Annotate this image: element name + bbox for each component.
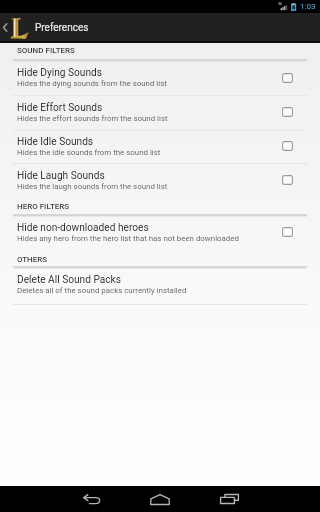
staticText: Hide Dying Sounds — [17, 67, 102, 79]
staticText: Delete All Sound Packs — [17, 274, 121, 286]
staticText: OTHERS — [17, 255, 48, 264]
button[interactable]: Hide Laugh Sounds — [0, 164, 320, 198]
staticText: Hides the dying sounds from the sound li… — [17, 79, 167, 88]
button[interactable]: Hide Dying Sounds — [0, 61, 320, 96]
button[interactable]: Navigate up — [0, 13, 34, 43]
staticText: HERO FILTERS — [17, 202, 70, 211]
button[interactable]: Back — [72, 486, 112, 512]
staticText: Hides any hero from the hero list that h… — [17, 234, 239, 243]
staticText: 1:03 — [300, 2, 316, 11]
button[interactable]: Hide Effort Sounds — [0, 96, 320, 130]
staticText: Hides the laugh sounds from the sound li… — [17, 182, 168, 191]
staticText: Hide Idle Sounds — [17, 136, 94, 148]
staticText: Hide Laugh Sounds — [17, 170, 105, 182]
button[interactable]: Recent apps — [209, 486, 249, 512]
staticText: Hides the effort sounds from the sound l… — [17, 114, 168, 123]
button[interactable]: Home — [140, 486, 180, 512]
button[interactable]: Delete All Sound Packs — [0, 268, 320, 304]
button[interactable]: Hide Idle Sounds — [0, 130, 320, 163]
staticText: SOUND FILTERS — [17, 46, 75, 55]
button[interactable]: Hide non-downloaded heroes — [0, 216, 320, 250]
staticText: Preferences — [35, 22, 89, 34]
staticText: Hide non-downloaded heroes — [17, 222, 149, 234]
staticText: Hides the idle sounds from the sound lis… — [17, 148, 161, 157]
staticText: Deletes all of the sound packs currently… — [17, 286, 187, 295]
staticText: Hide Effort Sounds — [17, 102, 103, 114]
